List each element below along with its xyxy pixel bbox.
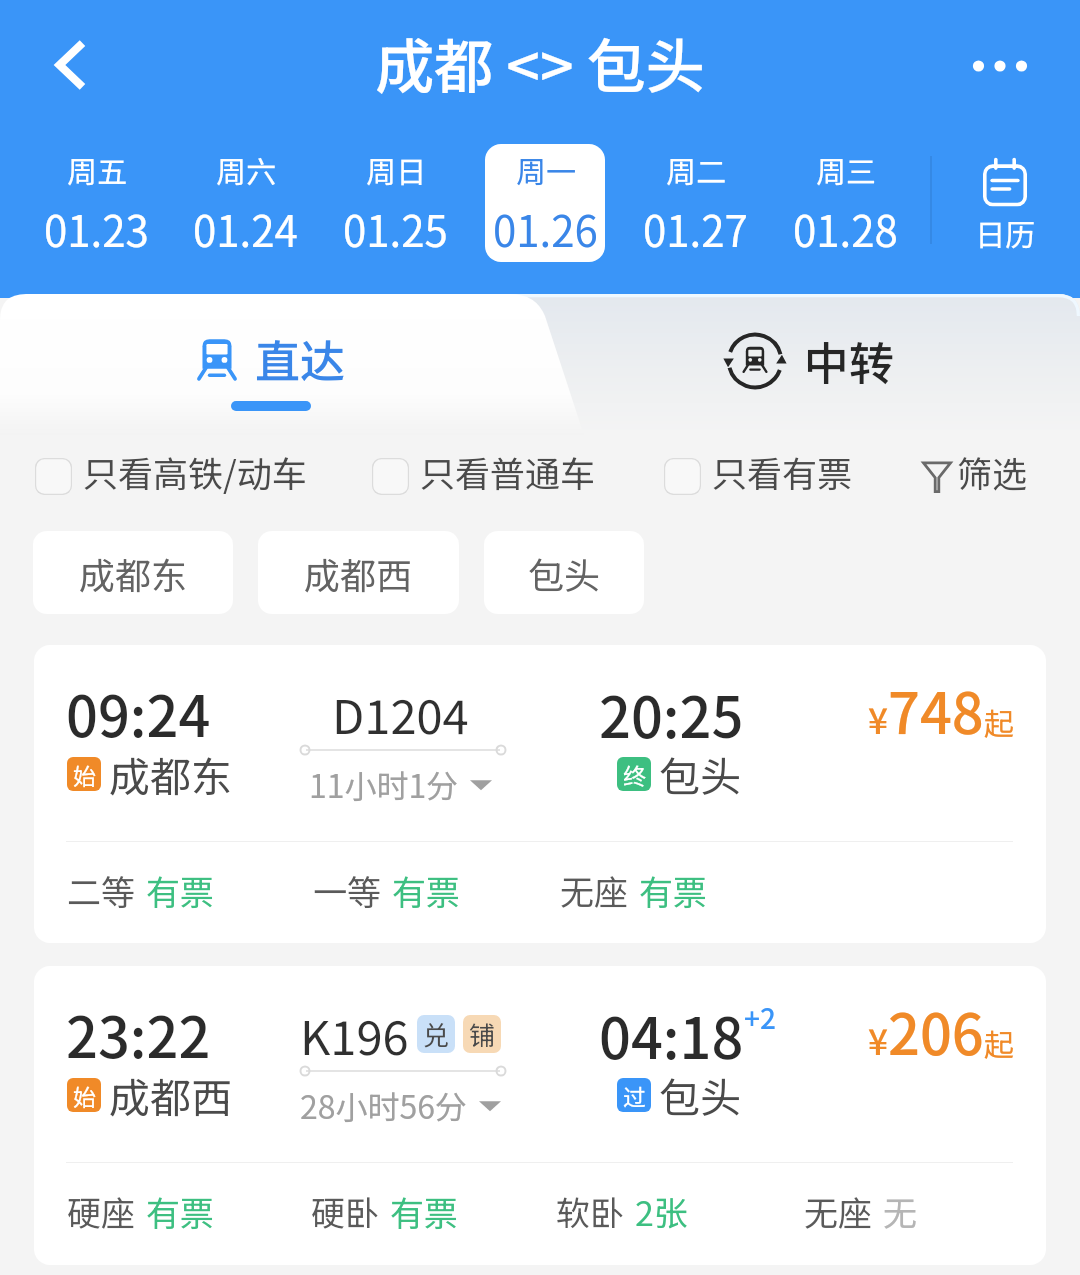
staticText: 周日 <box>366 148 426 191</box>
staticText: 有票 <box>392 866 460 915</box>
staticText: 软卧 <box>556 1187 624 1236</box>
button[interactable]: 只看高铁/动车 <box>35 445 307 497</box>
staticText: 周一 <box>516 148 576 191</box>
button[interactable]: More options <box>954 20 1046 112</box>
button[interactable]: 只看有票 <box>664 445 853 497</box>
staticText: 01.26 <box>493 198 598 259</box>
button[interactable]: 周六 <box>185 144 305 262</box>
button[interactable]: 周五 <box>36 144 156 262</box>
staticText: 2张 <box>635 1187 688 1236</box>
staticText: 04:18 <box>599 994 744 1075</box>
button[interactable]: 周一 <box>485 144 605 262</box>
staticText: 09:24 <box>66 672 211 753</box>
button[interactable]: 周二 <box>635 144 755 262</box>
staticText: 11小时1分 <box>309 761 459 807</box>
staticText: 起 <box>984 700 1014 743</box>
staticText: 筛选 <box>957 446 1028 497</box>
staticText: 成都东 <box>79 547 188 599</box>
button[interactable]: 成都东 <box>33 531 233 614</box>
staticText: 01.27 <box>643 198 748 259</box>
staticText: 28小时56分 <box>300 1082 468 1128</box>
button[interactable]: 中转 <box>540 294 1080 435</box>
staticText: 包头 <box>528 547 601 599</box>
staticText: 周二 <box>666 148 726 191</box>
staticText: 748 <box>888 669 984 750</box>
staticText: 过 <box>623 1079 646 1112</box>
button[interactable]: 周三 <box>785 144 905 262</box>
staticText: 包头 <box>659 1065 741 1124</box>
staticText: 周五 <box>67 148 127 191</box>
staticText: 只看普通车 <box>420 446 596 497</box>
button[interactable]: 成都西 <box>258 531 459 614</box>
staticText: ¥ <box>868 693 888 744</box>
staticText: 铺 <box>469 1015 496 1053</box>
button[interactable]: 日历 <box>945 158 1065 258</box>
staticText: 无座 <box>804 1187 872 1236</box>
button[interactable]: 只看普通车 <box>372 445 596 497</box>
staticText: 直达 <box>255 326 346 391</box>
staticText: 周六 <box>216 148 276 191</box>
button[interactable]: 09:24 <box>34 645 1046 943</box>
staticText: 有票 <box>146 1187 214 1236</box>
staticText: ¥ <box>868 1014 888 1065</box>
staticText: K196 <box>300 1000 409 1068</box>
staticText: 二等 <box>67 866 135 915</box>
staticText: 01.25 <box>343 198 448 259</box>
staticText: 无 <box>883 1187 917 1236</box>
staticText: +2 <box>744 997 776 1038</box>
staticText: 始 <box>73 1079 96 1112</box>
staticText: 206 <box>888 990 984 1071</box>
staticText: 无座 <box>560 866 628 915</box>
staticText: 23:22 <box>66 993 211 1074</box>
staticText: 包头 <box>659 744 741 803</box>
staticText: D1204 <box>332 679 469 747</box>
staticText: 兑 <box>423 1015 450 1053</box>
button[interactable]: 周日 <box>335 144 455 262</box>
staticText: 始 <box>73 758 96 791</box>
button[interactable]: Back <box>24 19 116 111</box>
staticText: 起 <box>984 1021 1014 1064</box>
button[interactable]: 包头 <box>484 531 644 614</box>
staticText: 20:25 <box>599 673 744 754</box>
staticText: 周三 <box>816 148 876 191</box>
staticText: 01.24 <box>193 198 298 259</box>
staticText: 终 <box>623 758 646 791</box>
staticText: 01.28 <box>793 198 898 259</box>
button[interactable]: 筛选 <box>922 445 1028 498</box>
staticText: 成都西 <box>304 547 413 599</box>
staticText: 只看高铁/动车 <box>83 446 307 497</box>
staticText: 只看有票 <box>712 446 853 497</box>
staticText: 成都东 <box>109 744 232 803</box>
button[interactable]: 23:22 <box>34 966 1046 1265</box>
staticText: 有票 <box>146 866 214 915</box>
button[interactable]: 直达 <box>0 294 540 435</box>
staticText: 有票 <box>390 1187 458 1236</box>
staticText: 中转 <box>804 328 895 393</box>
staticText: 有票 <box>639 866 707 915</box>
staticText: 一等 <box>313 866 381 915</box>
staticText: 成都西 <box>109 1065 232 1124</box>
staticText: 01.23 <box>44 198 149 259</box>
staticText: 硬卧 <box>311 1187 379 1236</box>
staticText: 成都 <> 包头 <box>375 20 705 105</box>
staticText: 硬座 <box>67 1187 135 1236</box>
staticText: 日历 <box>975 211 1035 254</box>
